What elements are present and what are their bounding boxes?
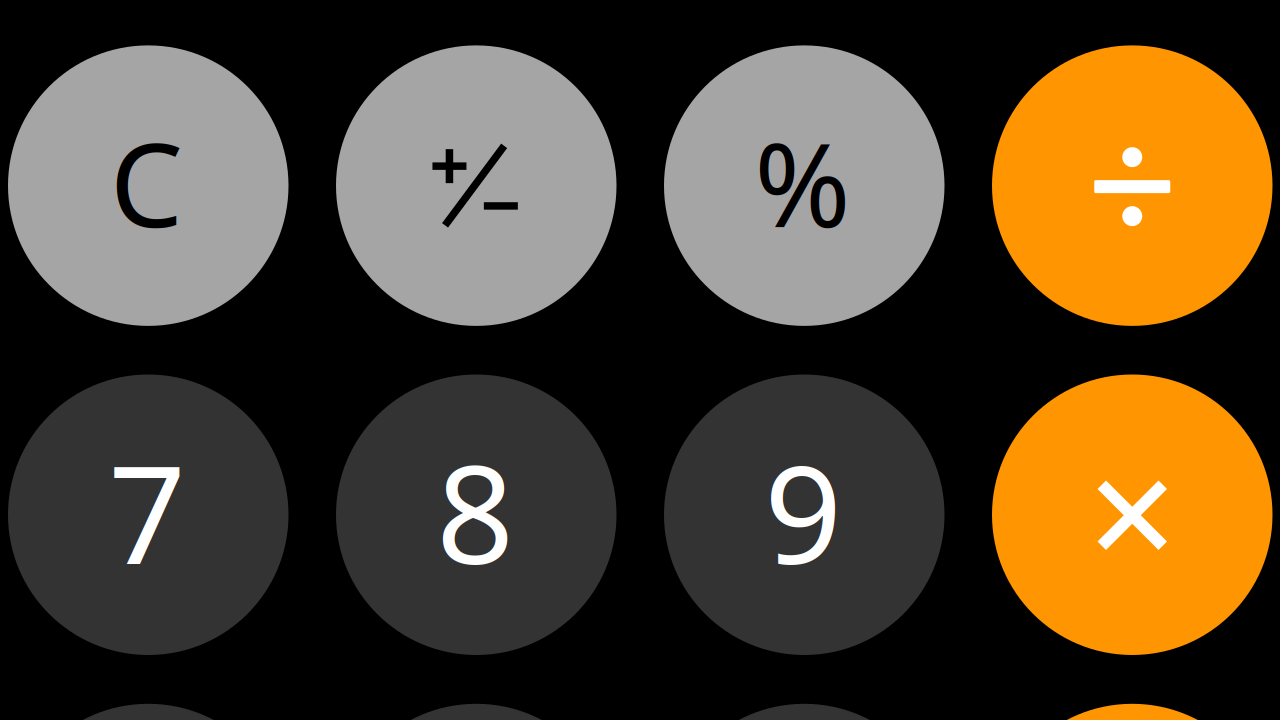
button[interactable]: Plus minus xyxy=(336,45,616,326)
staticText: 8 xyxy=(436,421,514,601)
button[interactable]: 8 xyxy=(336,374,616,655)
staticText: C xyxy=(110,105,183,259)
staticText: 7 xyxy=(108,421,186,601)
button[interactable]: Percent xyxy=(664,45,944,326)
staticText: % xyxy=(754,105,850,259)
button[interactable]: Subtract xyxy=(992,704,1272,720)
button[interactable]: 5 xyxy=(336,704,616,720)
button[interactable]: 6 xyxy=(664,704,944,720)
button[interactable]: Multiply xyxy=(992,374,1272,655)
button[interactable]: Clear xyxy=(8,45,288,326)
staticText: 9 xyxy=(764,421,842,601)
button[interactable]: 4 xyxy=(8,704,288,720)
button[interactable]: 9 xyxy=(664,374,944,655)
button[interactable]: Divide xyxy=(992,45,1272,326)
button[interactable]: 7 xyxy=(8,374,288,655)
